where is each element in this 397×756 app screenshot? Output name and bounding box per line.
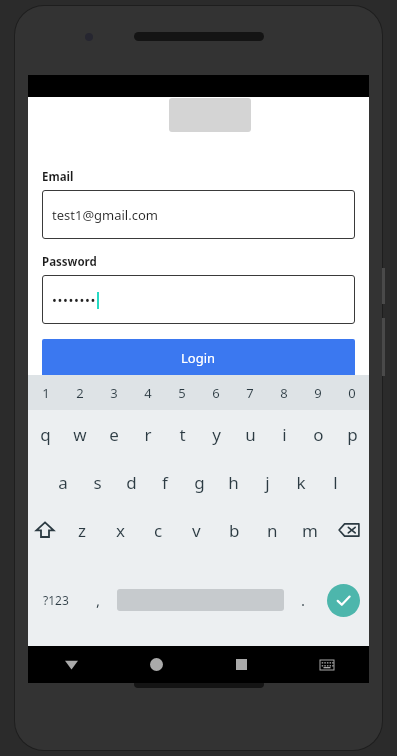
button[interactable]: 6 xyxy=(199,375,233,410)
button[interactable]: ?123 xyxy=(28,579,84,621)
staticText: •••••••• xyxy=(52,291,96,309)
staticText: d xyxy=(126,471,137,494)
button[interactable]: h xyxy=(216,458,250,506)
staticText: r xyxy=(144,423,152,446)
button[interactable]: b xyxy=(215,506,253,554)
staticText: s xyxy=(93,471,102,494)
staticText: k xyxy=(296,471,306,494)
staticText: t xyxy=(179,423,186,446)
button[interactable]: Shift xyxy=(28,506,62,554)
staticText: 3 xyxy=(110,384,118,402)
button[interactable]: 1 xyxy=(28,375,63,410)
button[interactable]: 5 xyxy=(165,375,199,410)
button[interactable]: n xyxy=(253,506,291,554)
staticText: 4 xyxy=(144,384,152,402)
button[interactable]: Recents xyxy=(199,646,284,683)
button[interactable]: Login xyxy=(42,339,355,377)
staticText: w xyxy=(73,423,87,446)
button[interactable]: k xyxy=(284,458,318,506)
button[interactable]: p xyxy=(335,410,369,458)
button[interactable]: 3 xyxy=(97,375,131,410)
button[interactable]: o xyxy=(301,410,335,458)
staticText: 0 xyxy=(348,384,356,402)
staticText: v xyxy=(192,519,201,542)
staticText: , xyxy=(96,590,101,610)
staticText: e xyxy=(109,423,119,446)
button[interactable]: Home xyxy=(114,646,199,683)
button[interactable]: , xyxy=(84,579,113,621)
button[interactable]: Enter xyxy=(327,584,360,617)
staticText: n xyxy=(267,519,278,542)
button[interactable]: e xyxy=(97,410,131,458)
button[interactable]: 9 xyxy=(301,375,335,410)
staticText: Email xyxy=(42,169,74,185)
button[interactable]: Back xyxy=(28,646,114,683)
staticText: i xyxy=(282,423,287,446)
button[interactable]: 7 xyxy=(233,375,267,410)
button[interactable]: l xyxy=(318,458,352,506)
staticText: test1@gmail.com xyxy=(52,206,158,224)
staticText: x xyxy=(116,519,125,542)
button[interactable]: 8 xyxy=(267,375,301,410)
staticText: b xyxy=(229,519,240,542)
staticText: q xyxy=(40,423,51,446)
button[interactable]: i xyxy=(267,410,301,458)
staticText: p xyxy=(347,423,358,446)
staticText: h xyxy=(228,471,239,494)
button[interactable]: v xyxy=(177,506,215,554)
staticText: ?123 xyxy=(43,592,69,608)
button[interactable]: t xyxy=(165,410,199,458)
staticText: u xyxy=(245,423,256,446)
button[interactable]: f xyxy=(148,458,182,506)
button[interactable]: . xyxy=(288,579,318,621)
button[interactable]: 4 xyxy=(131,375,165,410)
staticText: j xyxy=(265,471,270,494)
staticText: c xyxy=(154,519,163,542)
button[interactable]: q xyxy=(28,410,63,458)
staticText: 6 xyxy=(212,384,220,402)
staticText: . xyxy=(301,590,306,610)
staticText: o xyxy=(313,423,324,446)
button[interactable]: d xyxy=(114,458,148,506)
staticText: 9 xyxy=(314,384,322,402)
button[interactable]: x xyxy=(101,506,139,554)
button[interactable]: j xyxy=(250,458,284,506)
button[interactable]: c xyxy=(139,506,177,554)
staticText: 7 xyxy=(246,384,254,402)
staticText: l xyxy=(333,471,338,494)
button[interactable]: Backspace xyxy=(329,506,369,554)
button[interactable]: test1@gmail.com xyxy=(42,190,355,239)
staticText: m xyxy=(302,519,318,542)
button[interactable]: g xyxy=(182,458,216,506)
staticText: y xyxy=(212,423,221,446)
button[interactable]: r xyxy=(131,410,165,458)
button[interactable]: 0 xyxy=(335,375,369,410)
staticText: 8 xyxy=(280,384,288,402)
button[interactable]: s xyxy=(80,458,114,506)
button[interactable]: y xyxy=(199,410,233,458)
staticText: 2 xyxy=(76,384,84,402)
staticText: 1 xyxy=(42,384,50,402)
staticText: a xyxy=(58,471,68,494)
staticText: Password xyxy=(42,254,97,270)
button[interactable]: z xyxy=(62,506,101,554)
button[interactable]: m xyxy=(291,506,329,554)
button[interactable]: a xyxy=(45,458,80,506)
staticText: 5 xyxy=(178,384,186,402)
button[interactable]: Keyboard switcher xyxy=(284,646,369,683)
button[interactable]: u xyxy=(233,410,267,458)
button[interactable]: w xyxy=(63,410,97,458)
button[interactable]: 2 xyxy=(63,375,97,410)
staticText: g xyxy=(194,471,205,494)
staticText: z xyxy=(78,519,86,542)
button[interactable]: •••••••• xyxy=(42,275,355,324)
staticText: f xyxy=(162,471,168,494)
staticText: Login xyxy=(181,349,216,367)
